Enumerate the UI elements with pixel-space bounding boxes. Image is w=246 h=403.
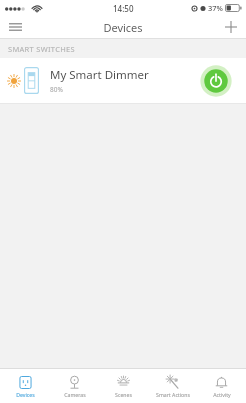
button[interactable]: Toggle My Smart Dimmer power — [199, 64, 233, 98]
staticText: Cameras — [64, 391, 86, 398]
staticText: Scenes — [115, 391, 132, 398]
button[interactable]: Menu — [0, 16, 30, 38]
staticText: Smart Actions — [156, 391, 190, 398]
button[interactable]: Scenes — [99, 369, 148, 403]
staticText: SMART SWITCHES — [8, 44, 75, 54]
button[interactable]: Activity — [197, 369, 246, 403]
staticText: 37% — [208, 3, 223, 13]
button[interactable]: Cameras — [50, 369, 99, 403]
staticText: Activity — [213, 391, 231, 398]
staticText: 14:50 — [113, 3, 134, 14]
staticText: My Smart Dimmer — [50, 67, 149, 83]
staticText: Devices — [16, 391, 35, 398]
button[interactable]: Add device — [216, 16, 246, 38]
staticText: 80% — [50, 85, 63, 94]
button[interactable]: Devices — [0, 369, 50, 403]
button[interactable]: Smart Actions — [148, 369, 197, 403]
button[interactable]: My Smart Dimmer — [0, 58, 246, 103]
staticText: Devices — [103, 20, 143, 35]
